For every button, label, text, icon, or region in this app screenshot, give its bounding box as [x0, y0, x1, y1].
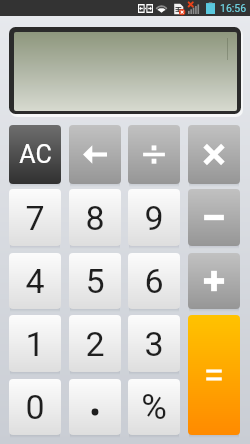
staticText: 7	[25, 198, 45, 238]
button[interactable]: 9	[128, 189, 180, 246]
staticText: AC	[19, 140, 52, 169]
button[interactable]: Minus	[188, 189, 240, 246]
button[interactable]: Plus	[188, 253, 240, 309]
button[interactable]: 0	[9, 379, 61, 435]
button[interactable]: Backspace	[69, 125, 121, 184]
button[interactable]: 1	[9, 315, 61, 372]
button[interactable]: Divide	[128, 125, 180, 184]
button[interactable]: 2	[69, 315, 121, 372]
staticText: %	[141, 387, 167, 428]
staticText: 4	[25, 261, 45, 301]
button[interactable]: Decimal point	[69, 379, 121, 435]
staticText: 6	[144, 261, 164, 301]
button[interactable]: 3	[128, 315, 180, 372]
staticText: 5	[85, 261, 105, 301]
button[interactable]: 4	[9, 253, 61, 309]
staticText: 16:56	[220, 2, 247, 14]
button[interactable]: 8	[69, 189, 121, 246]
staticText: 0	[25, 387, 45, 427]
staticText: 9	[144, 198, 164, 238]
staticText: 2	[85, 324, 105, 364]
staticText: 1	[25, 324, 45, 364]
button[interactable]: Equals	[188, 315, 240, 435]
button[interactable]: 5	[69, 253, 121, 309]
button[interactable]: 6	[128, 253, 180, 309]
staticText: 8	[85, 198, 105, 238]
button[interactable]: All clear	[9, 125, 61, 184]
button[interactable]: Percent	[128, 379, 180, 435]
button[interactable]: 7	[9, 189, 61, 246]
staticText: 3	[144, 324, 164, 364]
button[interactable]: Multiply	[188, 125, 240, 184]
